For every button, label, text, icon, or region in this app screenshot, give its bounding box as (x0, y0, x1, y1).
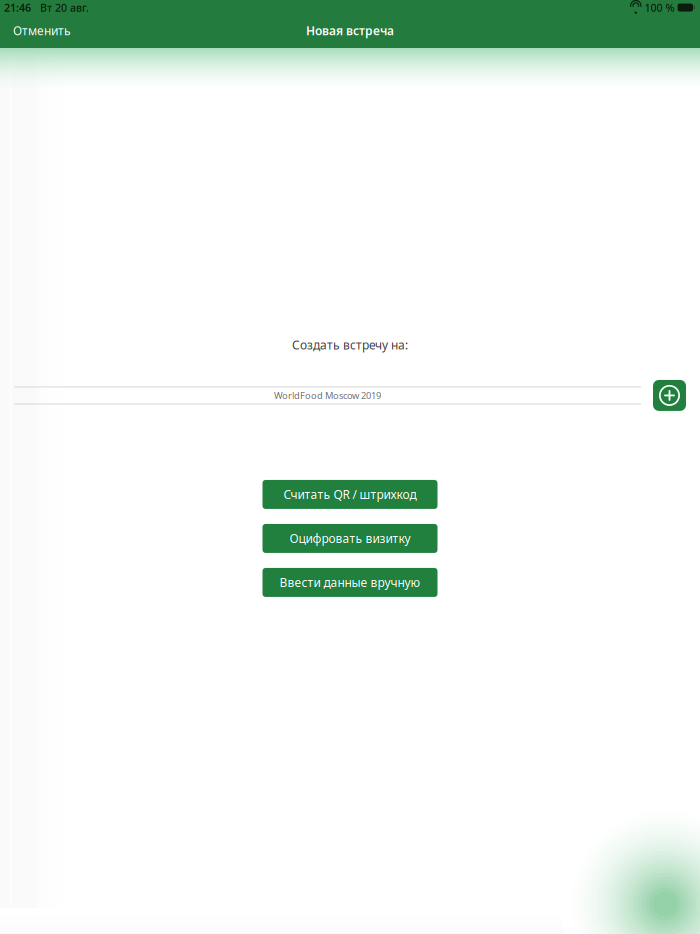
button[interactable]: Оцифровать визитку (262, 524, 437, 553)
staticText: Оцифровать визитку (289, 530, 410, 546)
button[interactable]: Считать QR / штрихкод (262, 480, 437, 509)
button[interactable]: Отменить (0, 14, 83, 46)
staticText: WorldFood Moscow 2019 (274, 389, 381, 402)
staticText: Считать QR / штрихкод (283, 486, 416, 502)
button[interactable]: Добавить встречу (653, 380, 686, 411)
staticText: Новая встреча (306, 22, 394, 38)
button[interactable]: WorldFood Moscow 2019 (14, 386, 641, 404)
staticText: Ввести данные вручную (279, 574, 420, 590)
staticText: Создать встречу на: (292, 337, 408, 353)
staticText: Вт 20 авг. (31, 0, 89, 15)
staticText: Отменить (13, 22, 71, 38)
staticText: 21:46 (4, 0, 31, 15)
staticText: 100 % (644, 0, 674, 15)
button[interactable]: Ввести данные вручную (262, 568, 437, 597)
